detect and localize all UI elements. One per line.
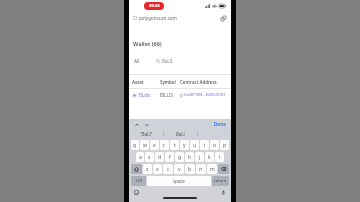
button[interactable]: BaLlL	[155, 56, 227, 65]
staticText: m	[210, 166, 215, 173]
button[interactable]: c	[163, 164, 173, 174]
staticText: "BaLl"	[140, 131, 153, 137]
staticText: j	[199, 154, 201, 161]
staticText: o	[213, 142, 217, 149]
staticText: polygonscan.com	[139, 15, 177, 21]
button[interactable]: g	[175, 152, 184, 162]
button[interactable]: Next field	[143, 121, 150, 128]
button[interactable]: Dictation	[220, 189, 227, 196]
button[interactable]: Emoji	[133, 189, 140, 196]
button[interactable]: BLdis	[129, 92, 231, 98]
staticText: r	[163, 142, 166, 149]
button[interactable]: q	[131, 140, 139, 150]
button[interactable]: Done	[213, 120, 227, 128]
staticText: h	[188, 154, 192, 161]
button[interactable]: o	[210, 140, 219, 150]
button[interactable]: y	[180, 140, 189, 150]
staticText: 0x6EF9fN…6D8UD3D	[184, 92, 226, 98]
staticText: space	[173, 178, 185, 184]
button[interactable]: Previous field	[133, 121, 140, 128]
button[interactable]: n	[196, 164, 206, 174]
button[interactable]: u	[190, 140, 199, 150]
staticText: e	[153, 142, 156, 149]
staticText: a	[139, 154, 142, 161]
button[interactable]: r	[160, 140, 169, 150]
staticText: BaLl	[176, 131, 185, 137]
button[interactable]: v	[174, 164, 184, 174]
staticText: d	[158, 154, 162, 161]
staticText: b	[188, 166, 192, 173]
staticText: Asset	[132, 79, 144, 85]
button[interactable]: "BaLl"	[129, 129, 163, 138]
staticText: y	[183, 142, 186, 149]
button[interactable]: polygonscan.com	[129, 12, 231, 23]
button[interactable]: m	[207, 164, 217, 174]
staticText: t	[174, 142, 176, 149]
button[interactable]: k	[205, 152, 214, 162]
button[interactable]: s	[145, 152, 154, 162]
staticText: l	[219, 154, 221, 161]
button[interactable]: p	[220, 140, 229, 150]
staticText: BLdis	[139, 92, 151, 98]
button[interactable]: e	[150, 140, 159, 150]
staticText: v	[178, 166, 181, 173]
button[interactable]: j	[195, 152, 204, 162]
staticText: 123	[135, 178, 143, 184]
button[interactable]: w	[140, 140, 149, 150]
button[interactable]: Shift	[131, 164, 142, 174]
button[interactable]: BaLl	[164, 129, 197, 138]
button[interactable]: a	[136, 152, 144, 162]
button[interactable]: l	[215, 152, 224, 162]
staticText: i	[204, 142, 206, 149]
staticText: p	[223, 142, 227, 149]
button[interactable]: Backspace	[218, 164, 229, 174]
staticText: s	[148, 154, 151, 161]
button[interactable]: space	[147, 176, 211, 186]
staticText: g	[178, 154, 182, 161]
staticText: Symbol	[160, 79, 176, 85]
button[interactable]: z	[143, 164, 152, 174]
staticText: x	[156, 166, 159, 173]
staticText: BILLIS	[160, 92, 173, 98]
staticText: q	[133, 142, 137, 149]
button[interactable]: Tabs	[219, 14, 227, 22]
staticText: f	[169, 154, 171, 161]
staticText: z	[146, 166, 149, 173]
staticText: w	[143, 142, 147, 149]
staticText: Done	[214, 121, 226, 127]
staticText: c	[167, 166, 170, 173]
button[interactable]: All	[133, 57, 141, 65]
staticText: 09:43	[149, 3, 160, 9]
button[interactable]: h	[185, 152, 194, 162]
button[interactable]: i	[200, 140, 209, 150]
button[interactable]: return	[212, 176, 229, 186]
staticText: return	[214, 178, 227, 184]
button[interactable]: b	[185, 164, 195, 174]
button[interactable]: f	[165, 152, 174, 162]
button[interactable]: x	[153, 164, 162, 174]
staticText: Contract Address	[180, 79, 217, 85]
staticText: k	[208, 154, 211, 161]
button[interactable]: d	[155, 152, 164, 162]
staticText: n	[199, 166, 203, 173]
staticText: Wallet (66)	[133, 40, 162, 48]
staticText: u	[193, 142, 197, 149]
staticText: All	[134, 58, 140, 64]
button[interactable]: 123	[131, 176, 146, 186]
button[interactable]: t	[170, 140, 179, 150]
staticText: BaLlL	[162, 58, 174, 64]
